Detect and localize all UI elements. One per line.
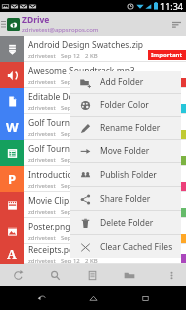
button[interactable]: Movie Clip.mp4 [0,192,186,218]
staticText: Sep 12 [61,182,80,190]
staticText: zdrivetest [28,130,56,138]
staticText: Receipts.pdf [28,244,78,256]
staticText: Delete Folder [100,217,154,229]
staticText: Move Folder [100,145,150,157]
staticText: Sep 12 [61,156,80,164]
button[interactable]: More options [156,264,186,286]
button[interactable]: Awesome Soundtrack.mp3 [0,62,186,88]
button[interactable]: Folders [111,264,148,286]
staticText: Poster.png [28,221,71,233]
staticText: zdrivetest@appsropos.com [22,26,99,34]
staticText: zdrivetest [28,156,56,164]
staticText: Sep 12 [61,104,80,112]
staticText: Sep 12 [61,130,80,138]
staticText: P [8,170,17,188]
staticText: 2 KB [85,52,98,60]
staticText: Golf Tournament.xls [28,143,109,155]
staticText: Introduction.ppt [28,169,94,181]
staticText: 11:34 [160,0,184,12]
button[interactable]: Poster.png [0,218,186,244]
staticText: Awesome Soundtrack.mp3 [28,65,135,77]
staticText: Sep 12 [61,208,80,216]
staticText: Sep 12 [61,257,80,264]
button[interactable]: Golf Tournament.xls [0,140,186,166]
button[interactable]: A [0,244,186,264]
button[interactable]: Editable Document.txt [0,88,186,114]
staticText: zdrivetest [28,257,56,264]
button[interactable]: Share Folder [70,187,181,210]
staticText: zdrivetest [28,234,56,242]
staticText: 2 KB [85,182,98,190]
button[interactable]: P [0,166,186,192]
button[interactable]: Back [30,287,52,309]
staticText: Movie Clip.mp4 [28,195,90,207]
staticText: 2 KB [85,130,98,138]
staticText: W [6,118,19,136]
staticText: zdrivetest [28,104,56,112]
button[interactable]: Open navigation drawer [0,12,6,36]
button[interactable]: Move Folder [70,140,181,162]
button[interactable]: Recent apps [134,287,156,309]
staticText: Add Folder [100,76,144,88]
staticText: zdrivetest [28,182,56,190]
staticText: 2 KB [85,257,98,264]
staticText: Golf Tournament.doc [28,117,113,129]
staticText: Android Design Swatches.zip [28,39,144,51]
staticText: Publish Folder [100,169,157,181]
staticText: 2 KB [85,104,98,112]
button[interactable]: Rename Folder [70,117,181,139]
button[interactable]: Clear Cached Files [70,235,181,258]
staticText: Rename Folder [100,122,161,134]
staticText: Sep 12 [61,234,80,242]
staticText: 2 KB [85,234,98,242]
button[interactable]: Sort [166,12,186,36]
button[interactable]: W [0,114,186,140]
button[interactable]: Android Design Swatches.zip [0,36,186,62]
staticText: Sep 12 [61,52,80,60]
staticText: A [7,245,17,263]
button[interactable]: List view [74,264,111,286]
staticText: zdrivetest [28,78,56,86]
staticText: zdrivetest [28,208,56,216]
staticText: Share Folder [100,193,151,205]
button[interactable]: Add Folder [70,71,181,93]
staticText: zdrivetest [28,52,56,60]
staticText: Folder Color [100,99,149,111]
staticText: Sep 12 [61,78,80,86]
button[interactable]: Search [37,264,74,286]
staticText: ZDrive [22,14,50,26]
staticText: 2 KB [85,208,98,216]
button[interactable]: Folder Color [70,94,181,116]
staticText: 2 KB [85,78,98,86]
button[interactable]: Home [82,287,104,309]
button[interactable]: Publish Folder [70,163,181,186]
staticText: Important [151,51,183,59]
button[interactable]: Refresh [0,264,37,286]
staticText: 2 KB [85,156,98,164]
staticText: Clear Cached Files [100,241,173,253]
staticText: Editable Document.txt [28,91,118,103]
button[interactable]: Delete Folder [70,211,181,234]
